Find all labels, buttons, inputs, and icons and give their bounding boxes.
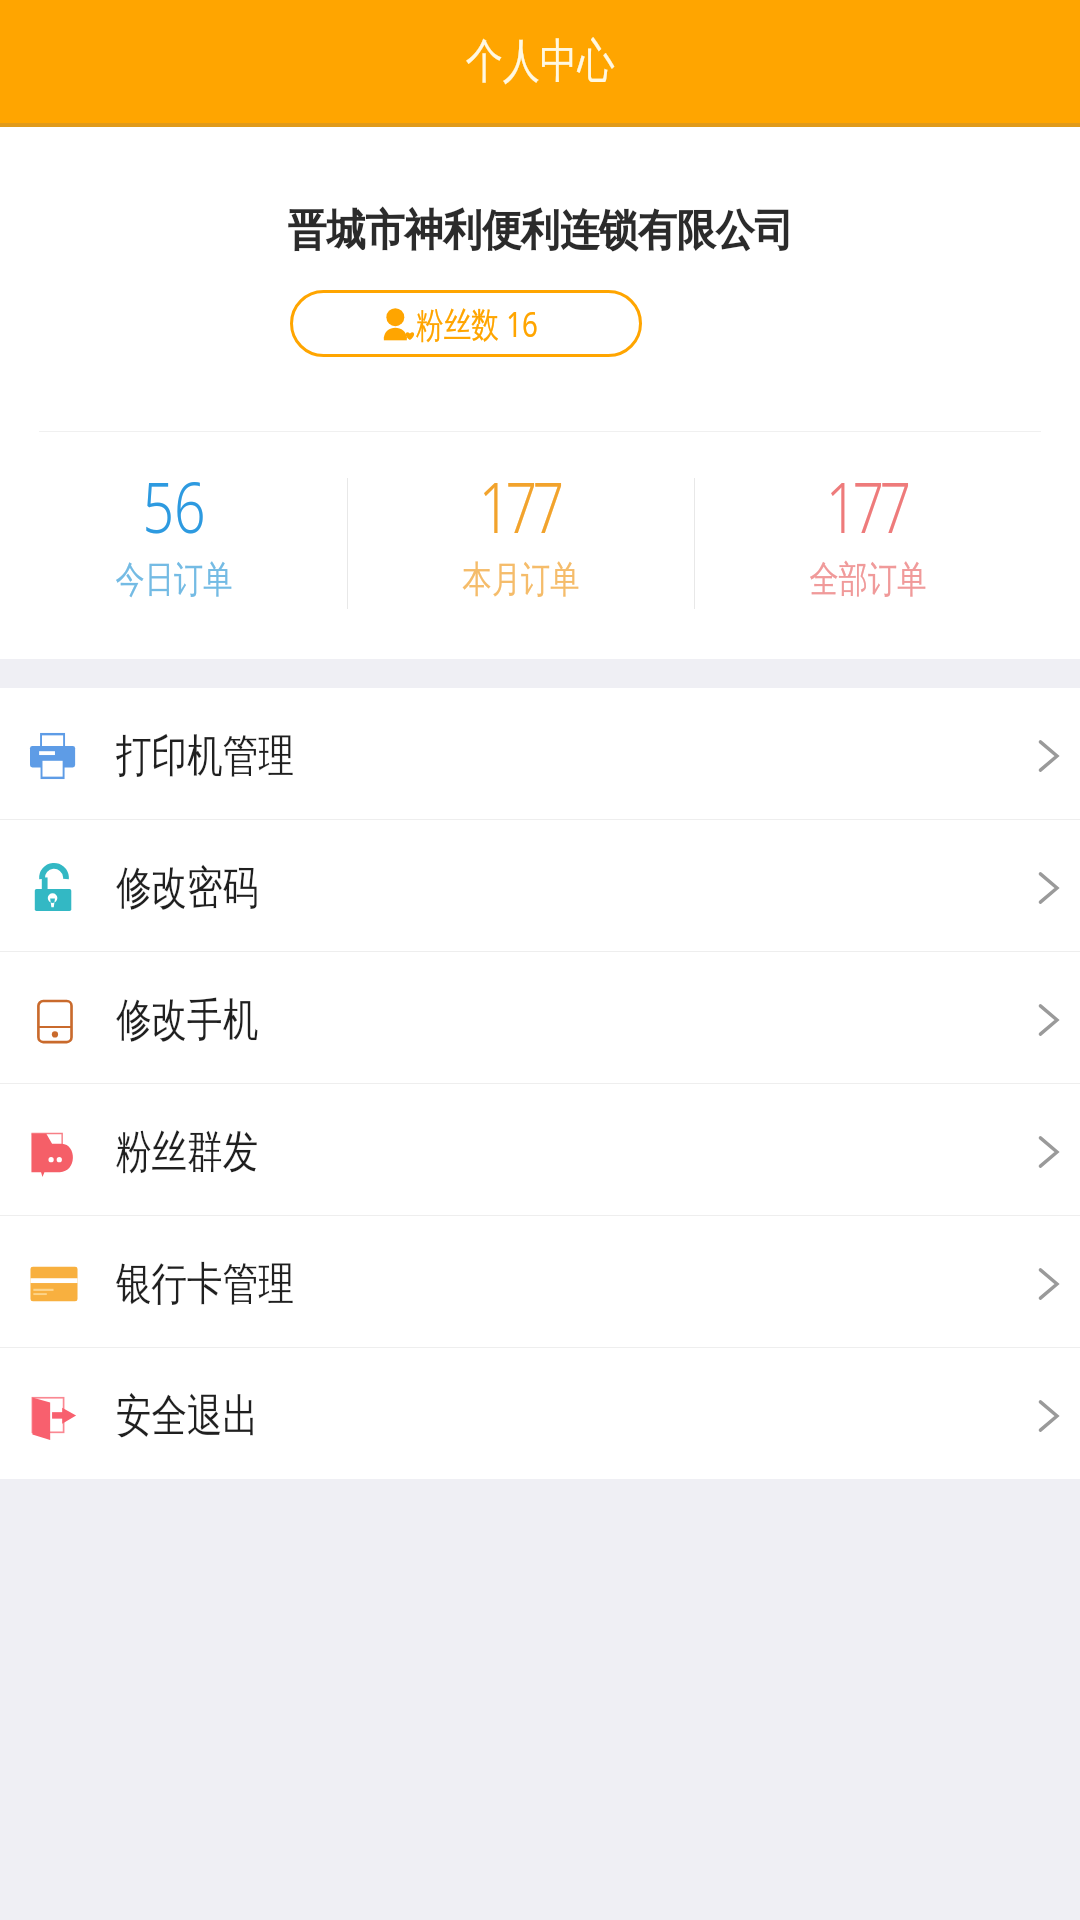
other: 打开打印机管理 (1038, 741, 1058, 771)
button[interactable]: 安全退出 (0, 1348, 1080, 1479)
other: 打开修改密码 (1038, 873, 1058, 903)
button[interactable]: 56 (0, 432, 347, 659)
staticText: 56 (142, 458, 206, 553)
staticText: 个人中心 (466, 32, 614, 91)
button[interactable]: 177 (695, 432, 1041, 659)
other: 打开安全退出 (1038, 1401, 1058, 1431)
staticText: 粉丝数 16 (416, 300, 538, 348)
staticText: 本月订单 (462, 556, 579, 603)
button[interactable]: 177 (348, 432, 694, 659)
button[interactable]: 修改密码 (0, 820, 1080, 951)
staticText: 今日订单 (115, 556, 232, 603)
button[interactable]: 修改手机 (0, 952, 1080, 1083)
staticText: 177 (479, 458, 559, 553)
button[interactable]: 粉丝数 16 (290, 290, 642, 357)
staticText: 177 (826, 458, 906, 553)
staticText: 打印机管理 (116, 728, 294, 785)
staticText: 晋城市神利便利连锁有限公司 (288, 204, 793, 258)
button[interactable]: 银行卡管理 (0, 1216, 1080, 1347)
staticText: 安全退出 (116, 1388, 258, 1445)
other: 打开粉丝群发 (1038, 1137, 1058, 1167)
other: 打开银行卡管理 (1038, 1269, 1058, 1299)
button[interactable]: 粉丝群发 (0, 1084, 1080, 1215)
staticText: 修改密码 (116, 860, 258, 917)
staticText: 粉丝群发 (116, 1124, 258, 1181)
button[interactable]: 打印机管理 (0, 688, 1080, 819)
other: 打开修改手机 (1038, 1005, 1058, 1035)
staticText: 修改手机 (116, 992, 258, 1049)
staticText: 银行卡管理 (116, 1256, 294, 1313)
staticText: 全部订单 (809, 556, 926, 603)
